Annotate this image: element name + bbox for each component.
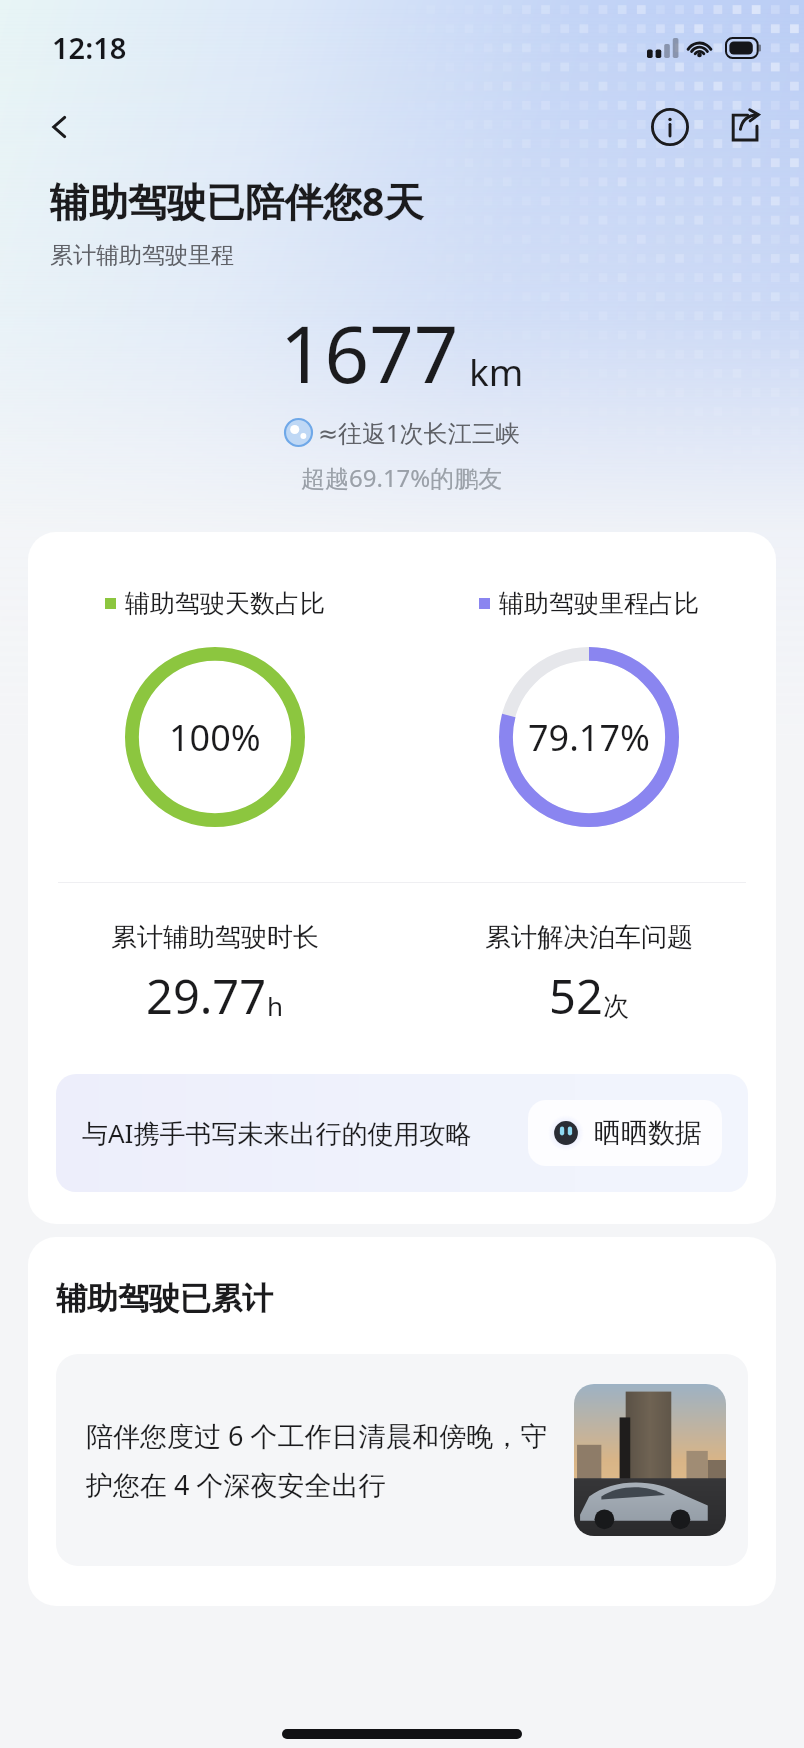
button[interactable]: Share [718,101,770,153]
staticText: 辅助驾驶已陪伴您8天 [50,174,424,227]
staticText: 100% [169,713,261,762]
staticText: 累计辅助驾驶里程 [50,241,234,270]
staticText: ≈往返1次长江三峡 [318,416,520,449]
staticText: 晒晒数据 [594,1116,702,1150]
staticText: 12:18 [52,28,127,67]
staticText: 累计辅助驾驶时长 [111,921,319,954]
staticText: h [267,988,284,1023]
button[interactable]: 辅助驾驶天数占比 [28,532,776,1224]
staticText: 1677 [280,300,459,406]
staticText: 辅助驾驶已累计 [56,1279,273,1318]
button[interactable]: Back [34,101,86,153]
staticText: 超越69.17%的鹏友 [301,461,503,494]
staticText: 52 [549,964,603,1028]
staticText: 与AI携手书写未来出行的使用攻略 [82,1115,472,1151]
staticText: 累计解决泊车问题 [485,921,693,954]
staticText: km [469,346,524,396]
staticText: 陪伴您度过 6 个工作日清晨和傍晚，守护您在 4 个深夜安全出行 [86,1417,560,1503]
button[interactable]: Info [644,101,696,153]
staticText: 辅助驾驶天数占比 [125,588,325,619]
staticText: 79.17% [528,713,650,762]
staticText: 29.77 [146,964,267,1028]
button[interactable]: 晒晒数据 [548,1115,702,1151]
button[interactable]: 辅助驾驶已累计 [28,1237,776,1606]
staticText: 辅助驾驶里程占比 [499,588,699,619]
button[interactable]: 与AI携手书写未来出行的使用攻略 [56,1074,748,1192]
staticText: 次 [603,990,629,1023]
